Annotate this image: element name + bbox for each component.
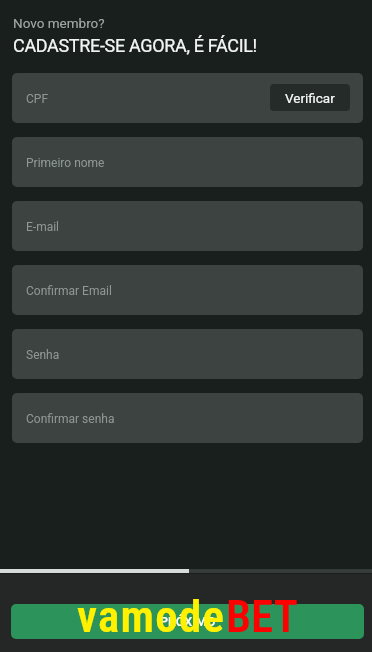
button[interactable]: Confirmar senha (12, 393, 363, 443)
staticText: Confirmar Email (26, 284, 112, 298)
staticText: BET (226, 590, 298, 643)
staticText: Verificar (285, 90, 335, 106)
staticText: Novo membro? (13, 15, 105, 31)
button[interactable]: Primeiro nome (12, 137, 363, 187)
staticText: Confirmar senha (26, 412, 115, 426)
staticText: Primeiro nome (26, 156, 105, 170)
button[interactable]: Senha (12, 329, 363, 379)
staticText: PRÓXIMO (160, 614, 216, 629)
button[interactable]: PRÓXIMO (11, 604, 364, 639)
button[interactable]: Verificar (270, 84, 350, 111)
button[interactable]: E-mail (12, 201, 363, 251)
button[interactable]: Confirmar Email (12, 265, 363, 315)
staticText: E-mail (26, 220, 60, 234)
button[interactable]: CPF (12, 73, 363, 123)
staticText: CADASTRE-SE AGORA, É FÁCIL! (13, 35, 257, 56)
staticText: vamode (77, 590, 226, 643)
staticText: CPF (26, 92, 49, 106)
staticText: Senha (26, 348, 60, 362)
